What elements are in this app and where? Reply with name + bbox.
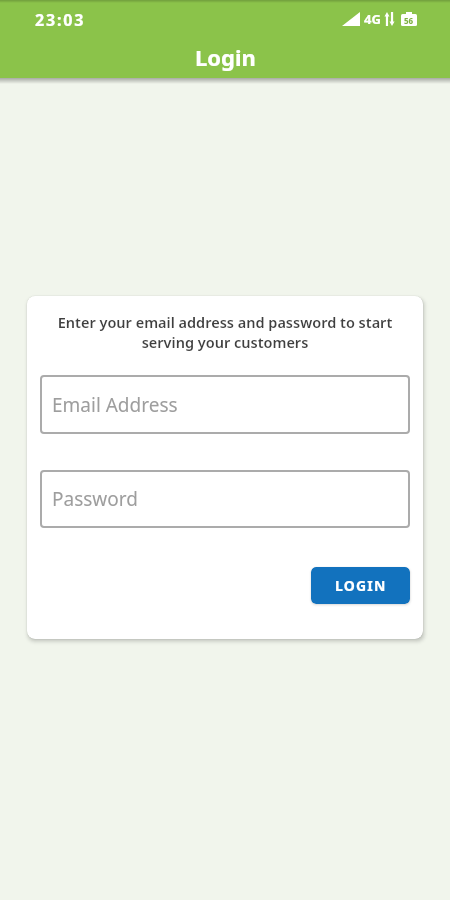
staticText: Login (195, 42, 256, 72)
button[interactable]: LOGIN (311, 567, 410, 604)
staticText: LOGIN (335, 576, 387, 595)
staticText: Enter your email address and password to… (40, 312, 410, 352)
button[interactable]: Password (40, 470, 410, 528)
staticText: 23:03 (35, 9, 86, 31)
staticText: Email Address (52, 392, 178, 418)
staticText: Password (52, 486, 138, 512)
staticText: 56 (404, 15, 414, 26)
button[interactable]: Email Address (40, 375, 410, 434)
staticText: 4G (364, 10, 381, 28)
